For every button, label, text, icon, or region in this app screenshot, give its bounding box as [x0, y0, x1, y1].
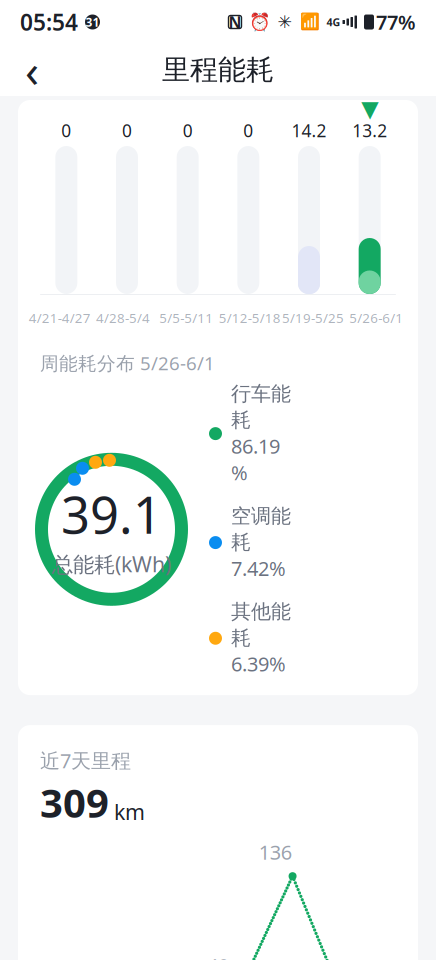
staticText: 空调能耗 7.42% [231, 504, 291, 581]
staticText: 05:54 [20, 7, 78, 37]
staticText: ‹ [25, 40, 39, 100]
staticText: 0 [122, 119, 132, 142]
staticText: 📶 [299, 13, 319, 31]
staticText: N [228, 11, 241, 33]
staticText: 309 [40, 776, 109, 829]
staticText: 5/5-5/11 [159, 309, 213, 327]
staticText: 近7天里程 [40, 747, 131, 774]
staticText: 行车能耗 86.19% [231, 381, 291, 486]
staticText: 136 [259, 839, 292, 865]
staticText: 13.2 [352, 119, 387, 142]
staticText: 里程能耗 [162, 53, 274, 87]
staticText: 0 [243, 119, 253, 142]
staticText: 40 [207, 952, 229, 960]
staticText: 31 [85, 14, 99, 30]
staticText: 其他能耗 6.39% [231, 599, 291, 677]
staticText: ⏰ [248, 12, 270, 32]
staticText: ✳ [277, 12, 292, 32]
staticText: 0 [61, 119, 71, 142]
staticText: 0 [183, 119, 193, 142]
staticText: 4/21-4/27 [29, 309, 91, 327]
button[interactable]: Back [10, 48, 54, 92]
staticText: 5/19-5/25 [282, 309, 344, 327]
staticText: 周能耗分布 5/26-6/1 [40, 351, 215, 375]
staticText: 77% [376, 9, 416, 35]
staticText: 总能耗(kWh) [52, 550, 171, 578]
staticText: 39.1 [61, 480, 162, 548]
staticText: km [114, 797, 145, 826]
staticText: 4/28-5/4 [96, 309, 150, 327]
staticText: 5/26-6/1 [349, 309, 403, 327]
staticText: 5/12-5/18 [219, 309, 281, 327]
staticText: 4G [326, 15, 340, 29]
staticText: ▼ [361, 96, 378, 122]
staticText: 14.2 [291, 119, 326, 142]
